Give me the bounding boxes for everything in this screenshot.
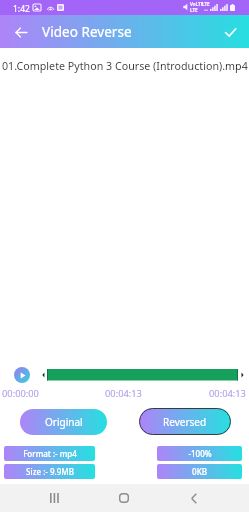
staticText: 1:42 — [13, 3, 30, 15]
staticText: Format :- mp4 — [23, 448, 77, 459]
staticText: 00:04:13 — [209, 387, 246, 400]
staticText: LTE — [190, 7, 198, 13]
button[interactable]: Recent apps — [26, 484, 84, 512]
staticText: 01.Complete Python 3 Course (Introductio… — [2, 59, 249, 74]
button[interactable]: Format :- mp4 — [4, 446, 95, 461]
button[interactable]: Original — [20, 409, 107, 435]
staticText: 0KB — [192, 466, 207, 477]
button[interactable]: Home — [95, 484, 153, 512]
button[interactable]: Back — [165, 484, 223, 512]
button[interactable]: 0KB — [157, 464, 242, 479]
button[interactable]: Reversed — [139, 408, 231, 435]
staticText: Original — [45, 415, 83, 429]
staticText: Size :- 9.9MB — [26, 466, 74, 477]
button[interactable]: Play — [14, 367, 30, 383]
staticText: Video Reverse — [42, 22, 132, 41]
button[interactable]: Size :- 9.9MB — [4, 464, 95, 479]
button[interactable]: Done — [217, 19, 243, 45]
staticText: 00:00:00 — [2, 387, 39, 400]
button[interactable]: -100% — [157, 446, 242, 461]
staticText: 00:04:13 — [105, 387, 142, 400]
staticText: -100% — [188, 448, 212, 459]
staticText: Reversed — [163, 415, 207, 429]
staticText: VoLTE — [190, 1, 204, 7]
staticText: LTE — [202, 1, 210, 7]
button[interactable]: Back — [8, 19, 34, 45]
